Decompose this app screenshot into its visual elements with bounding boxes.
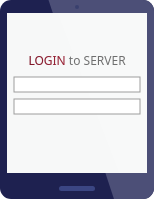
button[interactable]: Username — [14, 77, 140, 92]
staticText: LOGIN to SERVER — [28, 52, 126, 68]
button[interactable]: Password — [14, 99, 140, 114]
button[interactable]: Home — [59, 186, 95, 191]
